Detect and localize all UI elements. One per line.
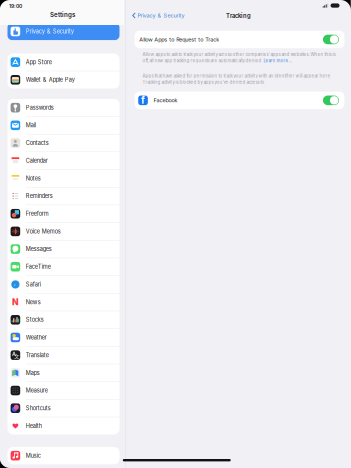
button[interactable]: Stocks [7,311,119,328]
staticText: Freeform [26,210,49,217]
button[interactable]: Privacy & Security [7,23,119,40]
staticText: Maps [26,369,40,376]
staticText: Health [26,422,42,429]
staticText: Notes [26,175,41,182]
button[interactable]: Maps [7,364,119,381]
staticText: Safari [26,281,41,288]
staticText: App Store [26,59,52,66]
button[interactable]: Allow Apps to Request to Track [135,31,344,48]
staticText: Wallet & Apple Pay [26,76,75,83]
button[interactable]: Shortcuts [7,400,119,417]
button[interactable]: Notes [7,170,119,187]
button[interactable]: Freeform [7,205,119,222]
staticText: Messages [26,246,52,252]
button[interactable]: Wallet & Apple Pay [7,71,119,88]
staticText: Facebook [153,97,177,104]
staticText: Calendar [26,157,48,164]
button[interactable]: A [7,346,119,364]
staticText: 19:00 [9,3,22,9]
button[interactable]: Health [7,417,119,434]
button[interactable]: Reminders [7,187,119,205]
button[interactable]: Contacts [7,134,119,152]
button[interactable]: Calendar [7,152,119,169]
staticText: 文 [14,353,20,360]
button[interactable]: Learn more… [263,58,292,63]
staticText: Translate [26,352,49,359]
button[interactable]: Voice Memos [7,223,119,240]
button[interactable]: Mail [7,117,119,134]
staticText: off, all new app tracking requests are a… [142,58,263,63]
button[interactable]: FaceTime [7,258,119,275]
staticText: Allow apps to ask to track your activity… [142,52,335,57]
button[interactable]: Weather [7,329,119,346]
staticText: f [141,94,145,106]
staticText: Privacy & Security [26,28,74,35]
staticText: Shortcuts [26,405,51,412]
staticText: Learn more… [263,58,292,63]
button[interactable]: App Store [7,53,119,71]
staticText: Measure [26,387,48,394]
staticText: Apps that have asked for permission to t… [142,73,331,78]
staticText: FaceTime [26,263,51,270]
button[interactable]: Measure [7,382,119,399]
button[interactable]: Passwords [7,99,119,116]
button[interactable]: Privacy & Security [126,12,185,19]
staticText: Mail [26,122,36,129]
staticText: Tracking [226,12,251,19]
staticText: Voice Memos [26,228,61,235]
staticText: Music [26,452,41,459]
staticText: A [12,351,16,357]
staticText: Reminders [26,193,53,199]
button[interactable]: Safari [7,276,119,293]
button[interactable]: f [135,92,344,109]
staticText: Allow Apps to Request to Track [139,36,219,43]
button[interactable]: Messages [7,240,119,258]
button[interactable]: N [7,293,119,311]
staticText: Stocks [26,316,44,323]
staticText: N [12,297,19,307]
staticText: News [26,299,41,305]
button[interactable]: Music [7,447,119,464]
staticText: Settings [50,11,75,18]
staticText: Contacts [26,140,49,146]
staticText: Tracking activity is blocked by apps you… [142,79,265,85]
staticText: Weather [26,334,47,341]
staticText: Passwords [26,104,54,111]
staticText: Privacy & Security [138,12,185,19]
